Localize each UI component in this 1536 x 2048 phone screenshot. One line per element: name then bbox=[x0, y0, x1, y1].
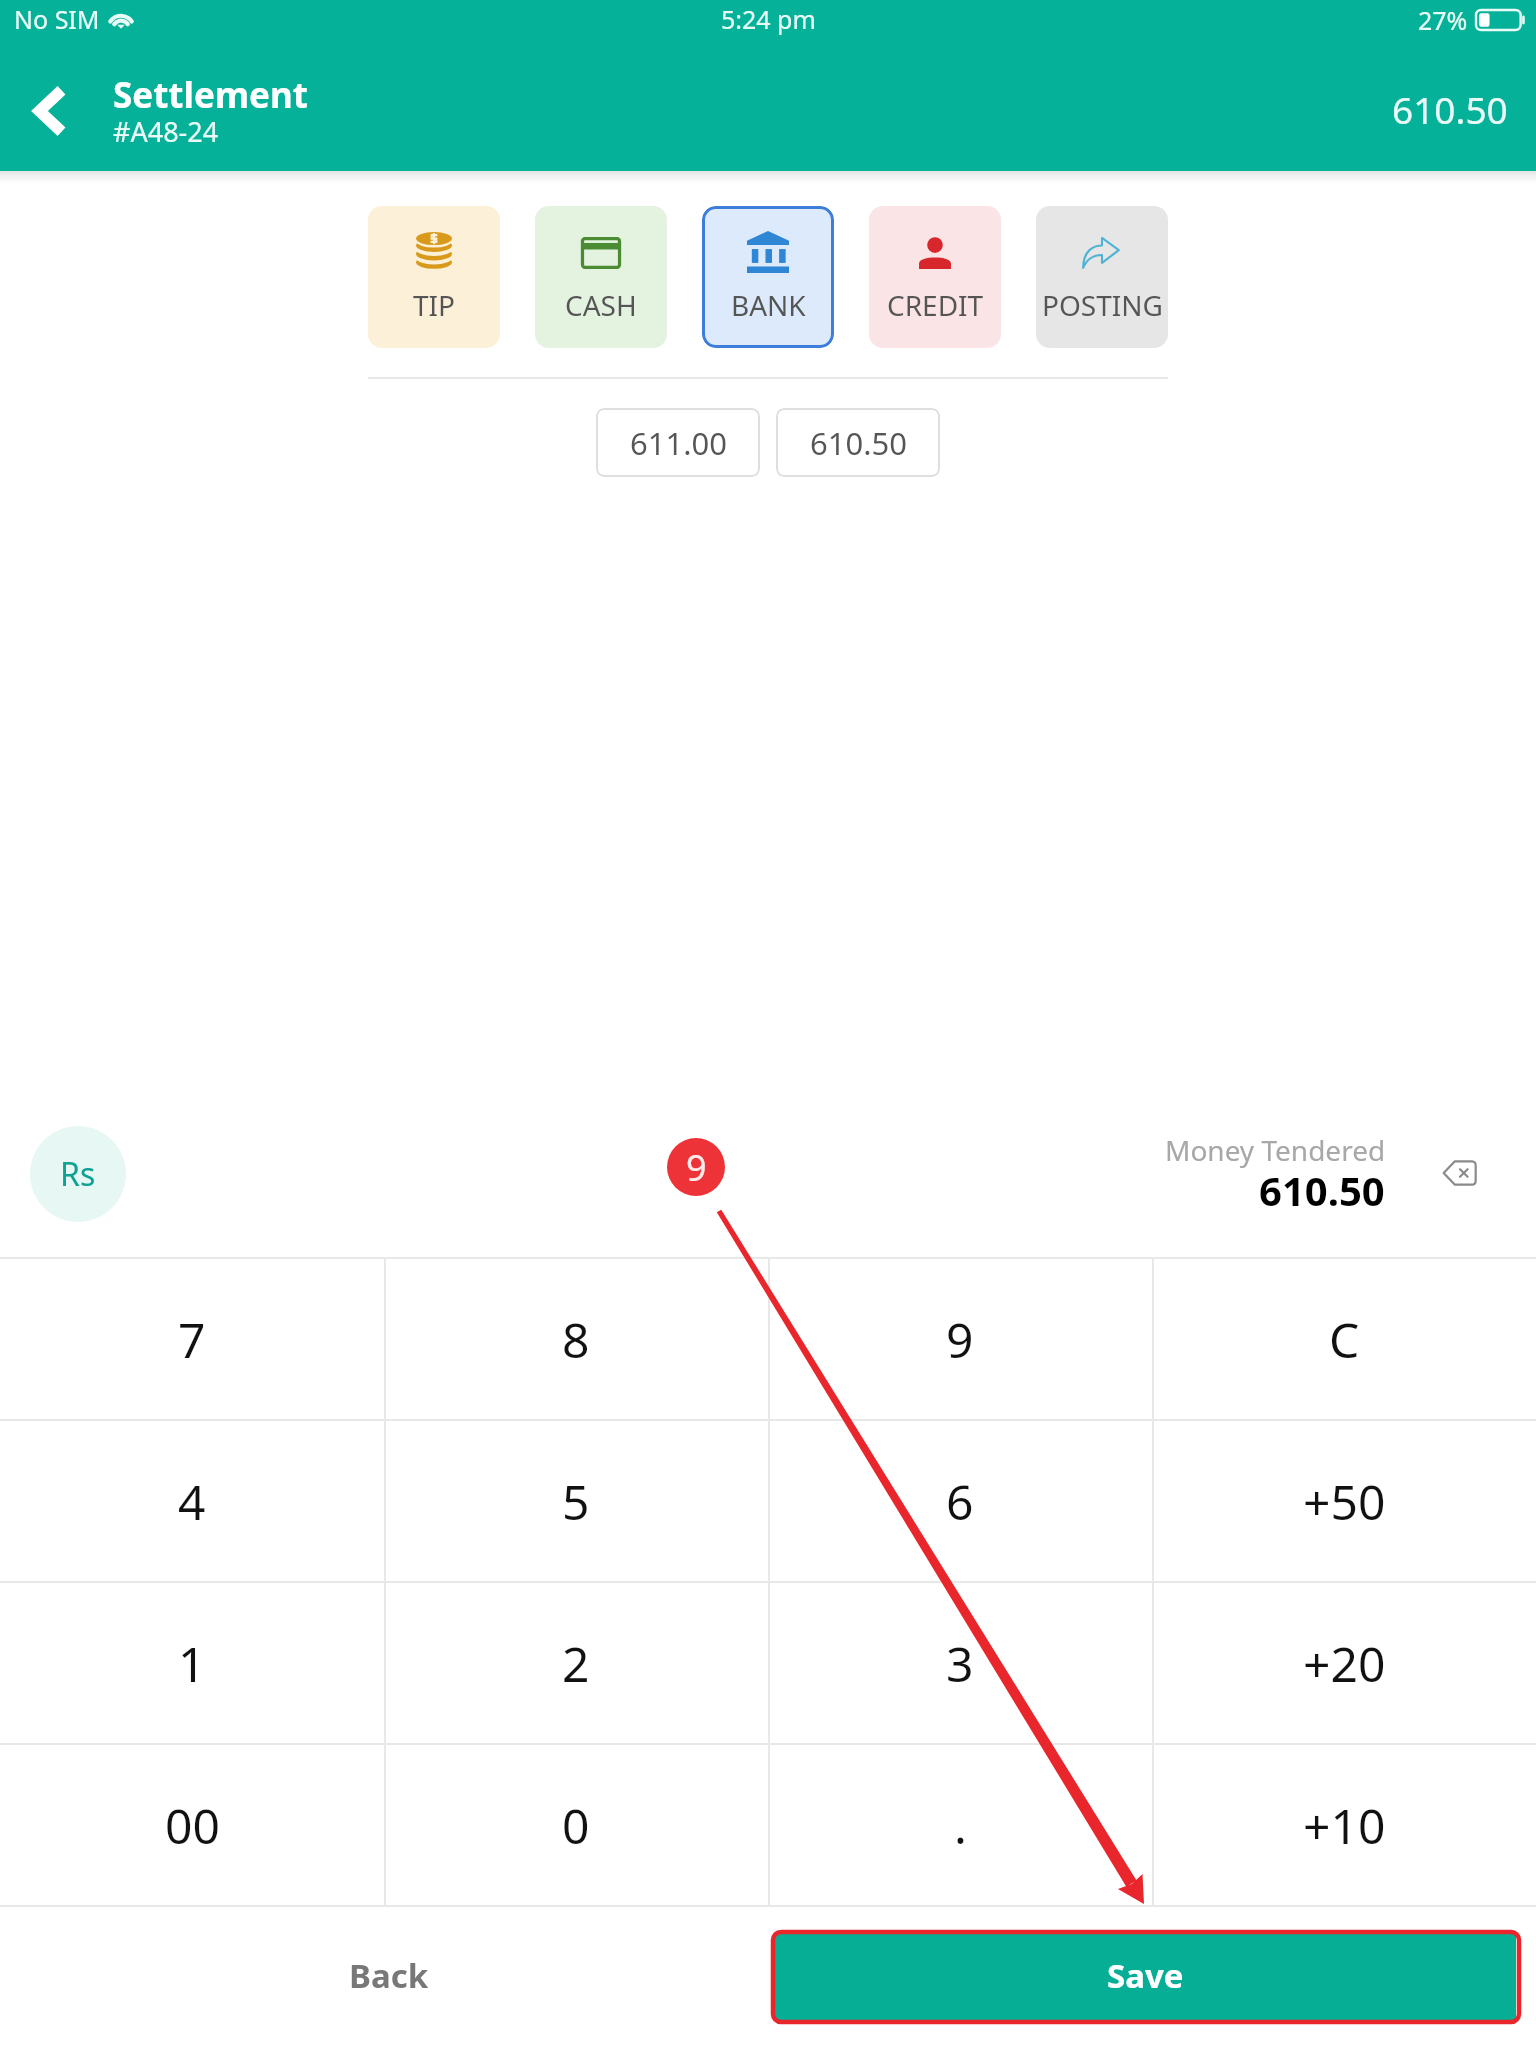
staticText: 1 bbox=[178, 1631, 206, 1696]
staticText: 00 bbox=[165, 1793, 220, 1858]
staticText: 0 bbox=[562, 1793, 590, 1858]
staticText: C bbox=[1329, 1307, 1360, 1372]
button[interactable]: 8 bbox=[384, 1259, 768, 1419]
staticText: No SIM bbox=[14, 2, 100, 36]
staticText: 2 bbox=[562, 1631, 590, 1696]
button[interactable]: 611.00 bbox=[596, 408, 760, 477]
staticText: Save bbox=[1107, 1953, 1184, 1998]
button[interactable]: 1 bbox=[0, 1583, 384, 1743]
staticText: 9 bbox=[946, 1307, 974, 1372]
button[interactable]: Save bbox=[774, 1931, 1516, 2020]
staticText: 610.50 bbox=[1259, 1163, 1385, 1217]
staticText: Back bbox=[349, 1953, 429, 1998]
button[interactable]: Rs bbox=[30, 1126, 126, 1222]
staticText: CASH bbox=[565, 286, 637, 324]
staticText: TIP bbox=[413, 286, 456, 324]
button[interactable]: +10 bbox=[1152, 1745, 1536, 1905]
button[interactable]: 6 bbox=[768, 1421, 1152, 1581]
staticText: +20 bbox=[1303, 1631, 1386, 1696]
button[interactable]: 3 bbox=[768, 1583, 1152, 1743]
staticText: 611.00 bbox=[630, 422, 727, 464]
staticText: 610.50 bbox=[810, 422, 907, 464]
staticText: 9 bbox=[686, 1143, 707, 1192]
button[interactable]: CREDIT bbox=[869, 206, 1001, 348]
button[interactable]: POSTING bbox=[1036, 206, 1168, 348]
button[interactable]: 4 bbox=[0, 1421, 384, 1581]
button[interactable]: C bbox=[1152, 1259, 1536, 1419]
staticText: 5 bbox=[562, 1469, 590, 1534]
staticText: 8 bbox=[562, 1307, 590, 1372]
staticText: +50 bbox=[1303, 1469, 1386, 1534]
staticText: Settlement bbox=[113, 71, 308, 119]
staticText: 610.50 bbox=[1392, 84, 1508, 134]
button[interactable]: 0 bbox=[384, 1745, 768, 1905]
button[interactable]: CASH bbox=[535, 206, 667, 348]
staticText: #A48-24 bbox=[113, 113, 219, 150]
staticText: 27% bbox=[1418, 3, 1468, 37]
button[interactable]: 610.50 bbox=[776, 408, 940, 477]
staticText: 4 bbox=[178, 1469, 206, 1534]
button[interactable]: +50 bbox=[1152, 1421, 1536, 1581]
staticText: Rs bbox=[60, 1152, 96, 1196]
staticText: POSTING bbox=[1042, 286, 1163, 324]
staticText: 3 bbox=[946, 1631, 974, 1696]
staticText: . bbox=[954, 1793, 967, 1858]
button[interactable]: Back bbox=[249, 1929, 529, 2021]
staticText: 7 bbox=[178, 1307, 206, 1372]
staticText: Money Tendered bbox=[1165, 1131, 1386, 1169]
button[interactable]: 9 bbox=[768, 1259, 1152, 1419]
button[interactable]: . bbox=[768, 1745, 1152, 1905]
button[interactable]: Back bbox=[0, 50, 96, 171]
button[interactable]: Backspace bbox=[1437, 1151, 1481, 1195]
staticText: +10 bbox=[1303, 1793, 1386, 1858]
staticText: 5:24 pm bbox=[721, 2, 816, 36]
staticText: CREDIT bbox=[887, 286, 984, 324]
button[interactable]: BANK bbox=[702, 206, 834, 348]
staticText: BANK bbox=[731, 286, 806, 324]
button[interactable]: 00 bbox=[0, 1745, 384, 1905]
button[interactable]: TIP bbox=[368, 206, 500, 348]
button[interactable]: 5 bbox=[384, 1421, 768, 1581]
staticText: 6 bbox=[946, 1469, 974, 1534]
button[interactable]: +20 bbox=[1152, 1583, 1536, 1743]
button[interactable]: 7 bbox=[0, 1259, 384, 1419]
button[interactable]: 2 bbox=[384, 1583, 768, 1743]
